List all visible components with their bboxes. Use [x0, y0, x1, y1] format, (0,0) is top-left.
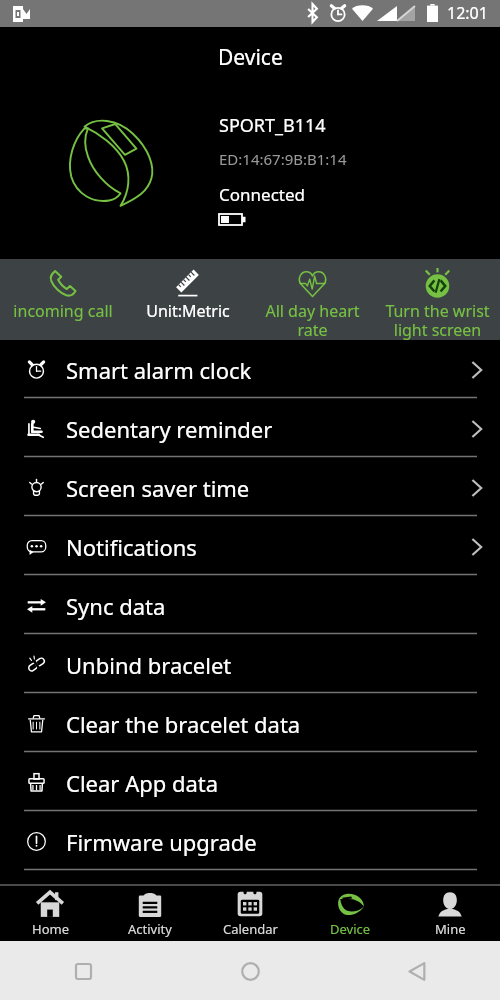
button[interactable]: Activity	[100, 886, 200, 941]
button[interactable]: Back	[400, 954, 434, 988]
staticText: 12:01	[447, 2, 488, 24]
button[interactable]: Recents	[66, 954, 100, 988]
button[interactable]: Screen saver time	[0, 458, 500, 517]
staticText: incoming call	[13, 300, 113, 322]
button[interactable]: Home	[0, 886, 100, 941]
staticText: All day heart rate	[265, 300, 360, 340]
staticText: Unbind bracelet	[66, 650, 232, 680]
staticText: Clear App data	[66, 768, 219, 798]
staticText: Mine	[435, 920, 466, 938]
staticText: Sync data	[66, 591, 166, 621]
staticText: Screen saver time	[66, 473, 250, 503]
button[interactable]: Calendar	[200, 886, 300, 941]
button[interactable]: Notifications	[0, 517, 500, 576]
button[interactable]: Device	[300, 886, 400, 941]
staticText: Activity	[128, 920, 172, 938]
button[interactable]: Clear the bracelet data	[0, 694, 500, 753]
staticText: Turn the wrist light screen	[385, 300, 490, 340]
staticText: SPORT_B114	[219, 113, 326, 138]
button[interactable]: Smart alarm clock	[0, 340, 500, 399]
button[interactable]: Sedentary reminder	[0, 399, 500, 458]
staticText: Calendar	[223, 920, 278, 938]
button[interactable]: Firmware upgrade	[0, 812, 500, 871]
staticText: Device	[218, 43, 283, 72]
button[interactable]: All day heart rate	[250, 259, 375, 340]
button[interactable]: Sync data	[0, 576, 500, 635]
staticText: Firmware upgrade	[66, 827, 257, 857]
button[interactable]: Turn the wrist light screen	[375, 259, 500, 340]
button[interactable]: Mine	[400, 886, 500, 941]
staticText: Smart alarm clock	[66, 355, 252, 385]
staticText: ED:14:67:9B:B1:14	[219, 149, 347, 169]
button[interactable]: Unit:Metric	[125, 259, 250, 340]
staticText: Clear the bracelet data	[66, 709, 301, 739]
staticText: Home	[32, 920, 69, 938]
button[interactable]: Unbind bracelet	[0, 635, 500, 694]
button[interactable]: Clear App data	[0, 753, 500, 812]
staticText: Unit:Metric	[146, 300, 230, 322]
staticText: Notifications	[66, 532, 197, 562]
button[interactable]: Home	[233, 954, 267, 988]
staticText: Sedentary reminder	[66, 414, 273, 444]
staticText: Connected	[219, 183, 305, 206]
staticText: Device	[330, 920, 371, 938]
button[interactable]: incoming call	[0, 259, 125, 340]
